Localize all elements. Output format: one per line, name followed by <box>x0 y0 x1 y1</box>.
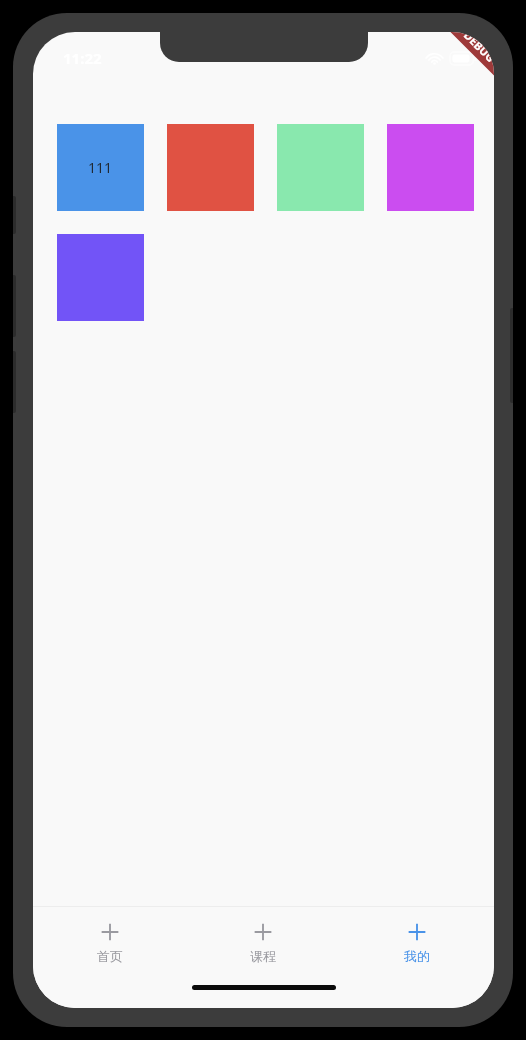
staticText: 111 <box>88 158 113 177</box>
button[interactable]: 首页 <box>33 907 186 979</box>
staticText: 课程 <box>250 948 276 964</box>
button[interactable]: 课程 <box>186 907 340 979</box>
staticText: DEBUG <box>461 32 494 65</box>
button[interactable]: 111 <box>57 124 144 211</box>
other: 首页 <box>99 921 121 943</box>
staticText: 首页 <box>97 948 123 964</box>
button[interactable]: 我的 <box>340 907 494 979</box>
staticText: 我的 <box>404 948 430 964</box>
other: 课程 <box>252 921 274 943</box>
other: 我的 <box>406 921 428 943</box>
